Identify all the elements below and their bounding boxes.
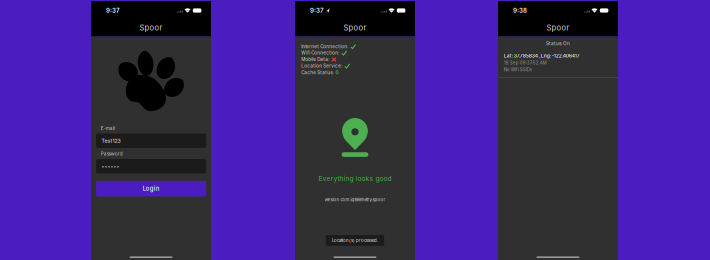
staticText: 18 Sep 09:37:52 AM <box>504 60 547 65</box>
staticText: 9:37 <box>106 7 120 14</box>
staticText: Spoor <box>546 23 569 32</box>
staticText: No Wifi SSIDs <box>504 67 532 72</box>
staticText: Spoor <box>139 23 162 32</box>
staticText: Status: On <box>546 41 570 46</box>
staticText: 0 <box>335 70 338 76</box>
staticText: Password <box>101 151 123 156</box>
staticText: Everything looks good <box>318 174 391 182</box>
staticText: Lat: 37.785834 , Lng: -122.406417 <box>504 53 580 59</box>
button[interactable]: Location(s) processed. <box>326 235 384 246</box>
button[interactable]: Login <box>96 181 206 196</box>
staticText: E-mail <box>101 125 115 131</box>
staticText: Spoor <box>343 23 366 32</box>
staticText: 9:38 <box>513 7 527 14</box>
staticText: Test123 <box>102 138 121 144</box>
staticText: Mobile Data: <box>301 57 329 62</box>
staticText: Cache Status: <box>301 70 333 75</box>
staticText: Internet Connection: <box>301 44 348 49</box>
staticText: •••••• <box>102 163 120 169</box>
staticText: Location(s) processed. <box>332 238 378 243</box>
staticText: 9:37 <box>310 7 324 14</box>
staticText: version com.iqtelemetry.spoor <box>324 197 385 202</box>
staticText: Wifi Connection: <box>301 50 339 56</box>
staticText: Login <box>143 185 160 192</box>
staticText: Location Service: <box>301 63 342 69</box>
